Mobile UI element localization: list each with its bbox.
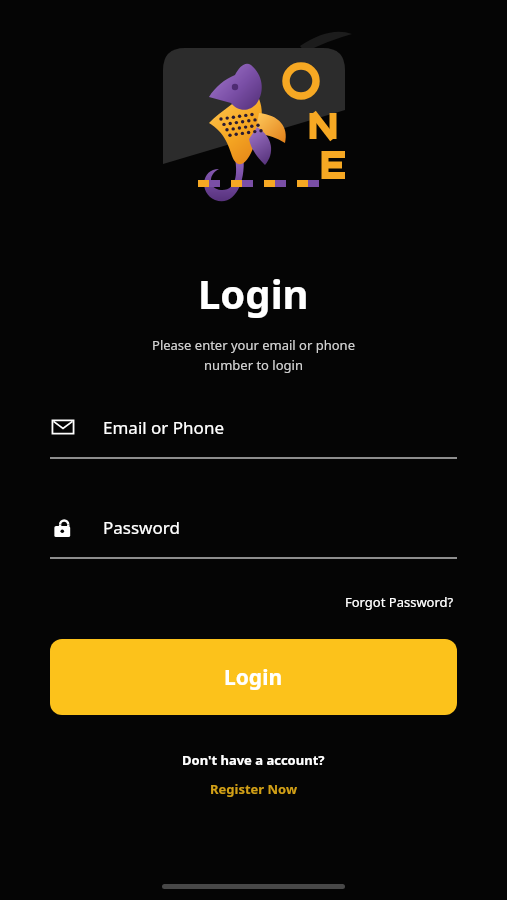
other: Email (51, 415, 75, 439)
staticText: Don't have a account? (182, 751, 325, 769)
staticText: Login (198, 266, 309, 320)
staticText: Forgot Password? (345, 593, 454, 611)
button[interactable]: Email (50, 414, 457, 459)
other: Password (51, 515, 75, 539)
staticText: Please enter your email or phone number … (152, 336, 355, 374)
button[interactable]: Password (50, 514, 457, 559)
staticText: Register Now (210, 780, 298, 798)
button[interactable]: Forgot Password? (342, 589, 457, 615)
button[interactable]: Login (50, 639, 457, 715)
staticText: Password (103, 516, 180, 539)
button[interactable]: Register Now (206, 778, 302, 800)
staticText: Email or Phone (103, 416, 224, 439)
staticText: Login (224, 663, 283, 692)
